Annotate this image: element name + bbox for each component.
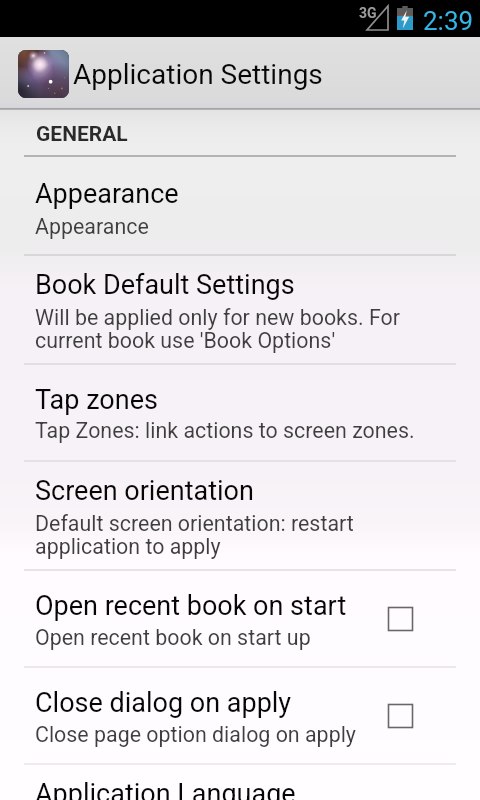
staticText: Screen orientation [35,475,254,507]
staticText: Will be applied only for new books. For … [35,305,435,353]
staticText: Default screen orientation: restart appl… [35,511,435,559]
button[interactable]: Appearance [0,157,480,255]
staticText: Open recent book on start up [35,625,311,650]
staticText: Application Language [35,778,296,800]
staticText: Appearance [35,178,179,210]
staticText: GENERAL [36,122,128,147]
staticText: Close dialog on apply [35,687,292,719]
button[interactable]: Screen orientation [0,461,480,570]
button[interactable]: Application Settings [0,37,339,110]
staticText: Tap zones [35,384,158,416]
staticText: Close page option dialog on apply [35,722,356,747]
button[interactable]: Book Default Settings [0,255,480,364]
staticText: Book Default Settings [35,269,295,301]
button[interactable]: Toggle Close dialog on apply [345,667,456,764]
button[interactable]: Tap zones [0,364,480,461]
staticText: Appearance [35,214,149,239]
staticText: Application Settings [73,58,323,91]
button[interactable]: Toggle Open recent book on start up [345,570,456,667]
button[interactable]: Open recent book on start up [0,570,480,667]
staticText: 2:39 [423,6,474,36]
button[interactable]: Application Language [0,764,480,800]
staticText: Tap Zones: link actions to screen zones. [35,418,415,443]
staticText: Open recent book on start up [35,590,368,622]
staticText: 3G [359,5,377,21]
button[interactable]: Close dialog on apply [0,667,480,764]
